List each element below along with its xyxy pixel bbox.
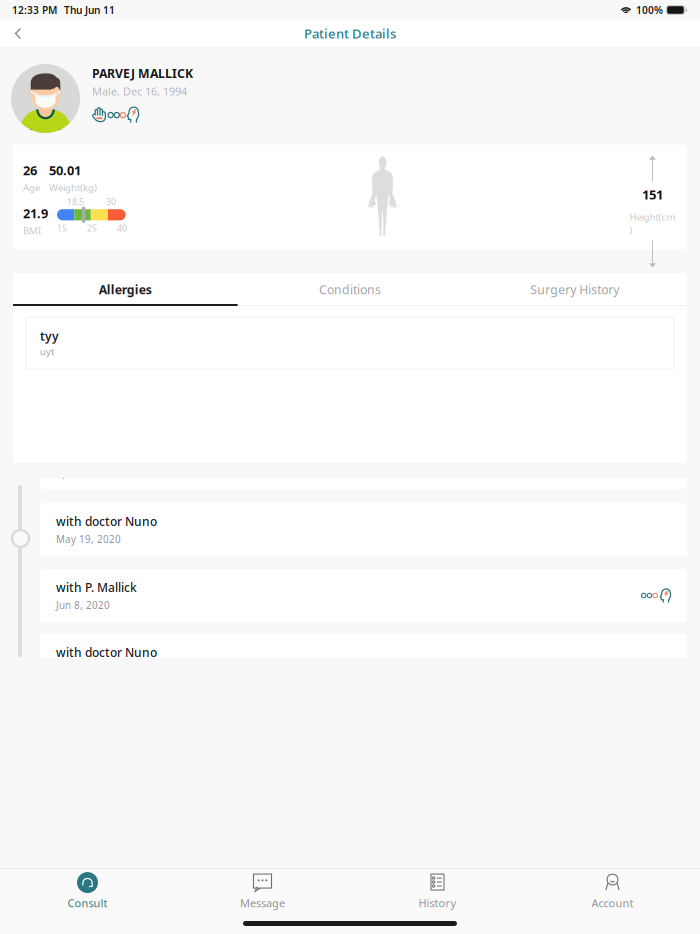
staticText: 18.5 [67,195,84,207]
button[interactable]: Allergies [13,273,238,306]
staticText: Weight(kg) [49,181,97,194]
staticText: Message [240,896,285,910]
button[interactable]: with doctor Nuno [40,634,687,687]
staticText: 151 [642,185,663,203]
staticText: Patient Details [304,25,396,42]
staticText: Allergies [99,281,152,298]
button[interactable]: Consult [0,869,175,913]
staticText: Jun 8, 2020 [56,598,110,612]
staticText: 30 [106,195,116,207]
button[interactable]: Message [175,869,350,913]
staticText: with P. Mallick [56,579,137,595]
staticText: Conditions [319,281,381,298]
staticText: Apr 27, 2020 [56,465,117,479]
button[interactable]: Conditions [238,273,462,306]
staticText: Account [591,896,633,910]
staticText: Thu Jun 11 [64,3,115,17]
staticText: 12:33 PM [12,3,57,17]
staticText: Consult [67,896,107,910]
staticText: BMI [23,224,41,237]
button[interactable]: Back [5,20,31,46]
staticText: 25 [87,222,97,234]
staticText: 15 [57,222,67,234]
staticText: History [418,896,456,910]
button[interactable]: Surgery History [462,273,687,306]
button[interactable]: History [350,869,525,913]
staticText: with doctor Nuno [56,513,157,529]
staticText: uyt [40,345,54,358]
staticText: tyy [40,328,59,344]
staticText: 40 [117,222,127,234]
staticText: Age [23,181,40,194]
staticText: 100% [636,3,663,17]
staticText: PARVEJ MALLICK [92,65,193,82]
staticText: 50.01 [49,161,81,179]
button[interactable]: with P. Mallick [40,569,687,622]
staticText: 21.9 [23,204,48,222]
staticText: Male, Dec 16, 1994 [92,84,187,99]
staticText: with doctor Nuno [56,644,157,660]
button[interactable]: Account [525,869,700,913]
staticText: Height(cm) [629,210,675,236]
staticText: Surgery History [530,281,619,298]
button[interactable]: with doctor A. [40,436,687,489]
button[interactable]: with doctor Nuno [40,503,687,556]
staticText: 26 [23,161,37,179]
staticText: May 19, 2020 [56,532,121,546]
